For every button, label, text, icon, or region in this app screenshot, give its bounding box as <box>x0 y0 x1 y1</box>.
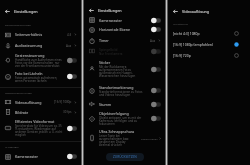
button[interactable]: Timer <box>84 35 165 46</box>
button[interactable]: Kameraraster <box>0 151 81 162</box>
staticText: 30 fps <box>63 110 72 114</box>
staticText: [16:9] 720p <box>173 53 234 58</box>
button[interactable]: Sticker <box>84 56 165 82</box>
staticText: Spiegelbild <box>99 47 118 52</box>
button[interactable]: [nicht 4:3] 1080p <box>168 28 250 39</box>
staticText: Kameraraster <box>15 154 67 159</box>
staticText: Nur Frontkamera <box>99 52 144 56</box>
button[interactable]: Off <box>151 67 161 72</box>
staticText: Audiosteuerung <box>15 43 66 48</box>
staticText: Kameraraster <box>99 18 151 23</box>
staticText: Leiser Taste bei ausgeschaltetem bzw. ge… <box>99 134 130 147</box>
staticText: Ultra-Schnappschuss <box>99 129 135 134</box>
staticText: VIDEOEINSTELLUNGEN <box>5 91 33 94</box>
staticText: ALLGEMEIN <box>5 145 19 148</box>
staticText: Timer <box>99 38 150 43</box>
staticText: [16:9] 1080p (empfohlen) <box>173 42 234 47</box>
staticText: FOTOEINSTELLUNGEN <box>5 23 32 26</box>
button[interactable]: Off <box>67 58 77 63</box>
staticText: Videoauflösung <box>182 9 210 14</box>
staticText: Einstellungen <box>98 8 122 13</box>
staticText: Standortinformationen zu Fotos und Video… <box>99 90 144 97</box>
button[interactable]: Audiosteuerung <box>0 40 81 51</box>
staticText: Aus <box>66 44 72 48</box>
button[interactable]: ZURÜCKSETZEN <box>106 153 144 161</box>
button[interactable]: Seitenverhältnis <box>0 29 81 40</box>
button[interactable]: Off <box>151 116 161 121</box>
button[interactable]: Bildrate <box>0 107 81 117</box>
staticText: Sticker <box>99 60 111 65</box>
button[interactable]: Off <box>151 102 161 107</box>
staticText: Standortmarkierung <box>99 85 134 90</box>
button[interactable]: Videoauflösung <box>0 97 81 107</box>
button[interactable]: Spiegelbild <box>84 46 165 56</box>
staticText: Seitenverhältnis <box>15 32 67 37</box>
staticText: Effizientes Videoformat <box>15 119 55 124</box>
staticText: [nicht 4:3] 1080p <box>173 31 234 36</box>
staticText: Handfläche zum Aufnehmen eines Fotos vor… <box>15 58 64 68</box>
staticText: 4:3 <box>67 33 72 37</box>
button[interactable]: [16:9] 720p <box>168 50 250 61</box>
button[interactable]: On <box>151 18 161 23</box>
staticText: Foto bei Lächeln <box>15 71 43 76</box>
staticText: Fotos automatisch aufnehmen, wenn Person… <box>15 76 64 83</box>
staticText: Objektverfolgung <box>99 111 129 116</box>
staticText: Videoauflösung <box>15 100 54 105</box>
button[interactable]: Objektverfolgung <box>84 109 165 128</box>
staticText: Horizontale Ebene <box>99 27 151 32</box>
button[interactable]: Back <box>3 7 12 16</box>
button[interactable]: Back <box>87 6 96 15</box>
staticText: Mit der Rückkamera aufgenommenen Fotos a… <box>99 65 144 78</box>
staticText: Objekt antippen, um es mit der Kamera zu… <box>99 116 144 126</box>
button[interactable]: [16:9] 1080p (empfohlen) <box>168 39 250 50</box>
staticText: Speicherplatz für Videos um ca. 35 % red… <box>15 124 64 137</box>
staticText: Aus <box>150 39 156 43</box>
staticText: ZURÜCKSETZEN <box>113 155 137 159</box>
button[interactable]: Standortmarkierung <box>84 82 165 99</box>
button[interactable]: Off <box>151 49 161 54</box>
staticText: Stumm <box>99 102 151 107</box>
button[interactable]: Off <box>151 88 161 93</box>
button[interactable]: Ultra-Schnappschuss <box>84 128 165 148</box>
button[interactable]: Kameraraster <box>84 16 165 24</box>
button[interactable]: Stumm <box>84 99 165 109</box>
staticText: Einstellungen <box>14 9 38 14</box>
button[interactable]: On <box>151 27 161 32</box>
staticText: AUFLÖSUNG <box>173 22 188 25</box>
button[interactable]: Effizientes Videoformat <box>0 117 81 139</box>
staticText: [16:9] 1080p <box>54 100 72 104</box>
button[interactable]: Gestensteuerung <box>0 51 81 69</box>
button[interactable]: On <box>67 126 77 131</box>
staticText: Bildrate <box>15 110 63 115</box>
button[interactable]: Foto bei Lächeln <box>0 69 81 84</box>
staticText: Kamera öffnen <box>141 137 158 140</box>
button[interactable]: Back <box>171 7 180 16</box>
button[interactable]: Horizontale Ebene <box>84 24 165 35</box>
button[interactable]: On <box>67 154 77 159</box>
button[interactable]: On <box>67 74 77 79</box>
staticText: Gestensteuerung <box>15 53 45 58</box>
